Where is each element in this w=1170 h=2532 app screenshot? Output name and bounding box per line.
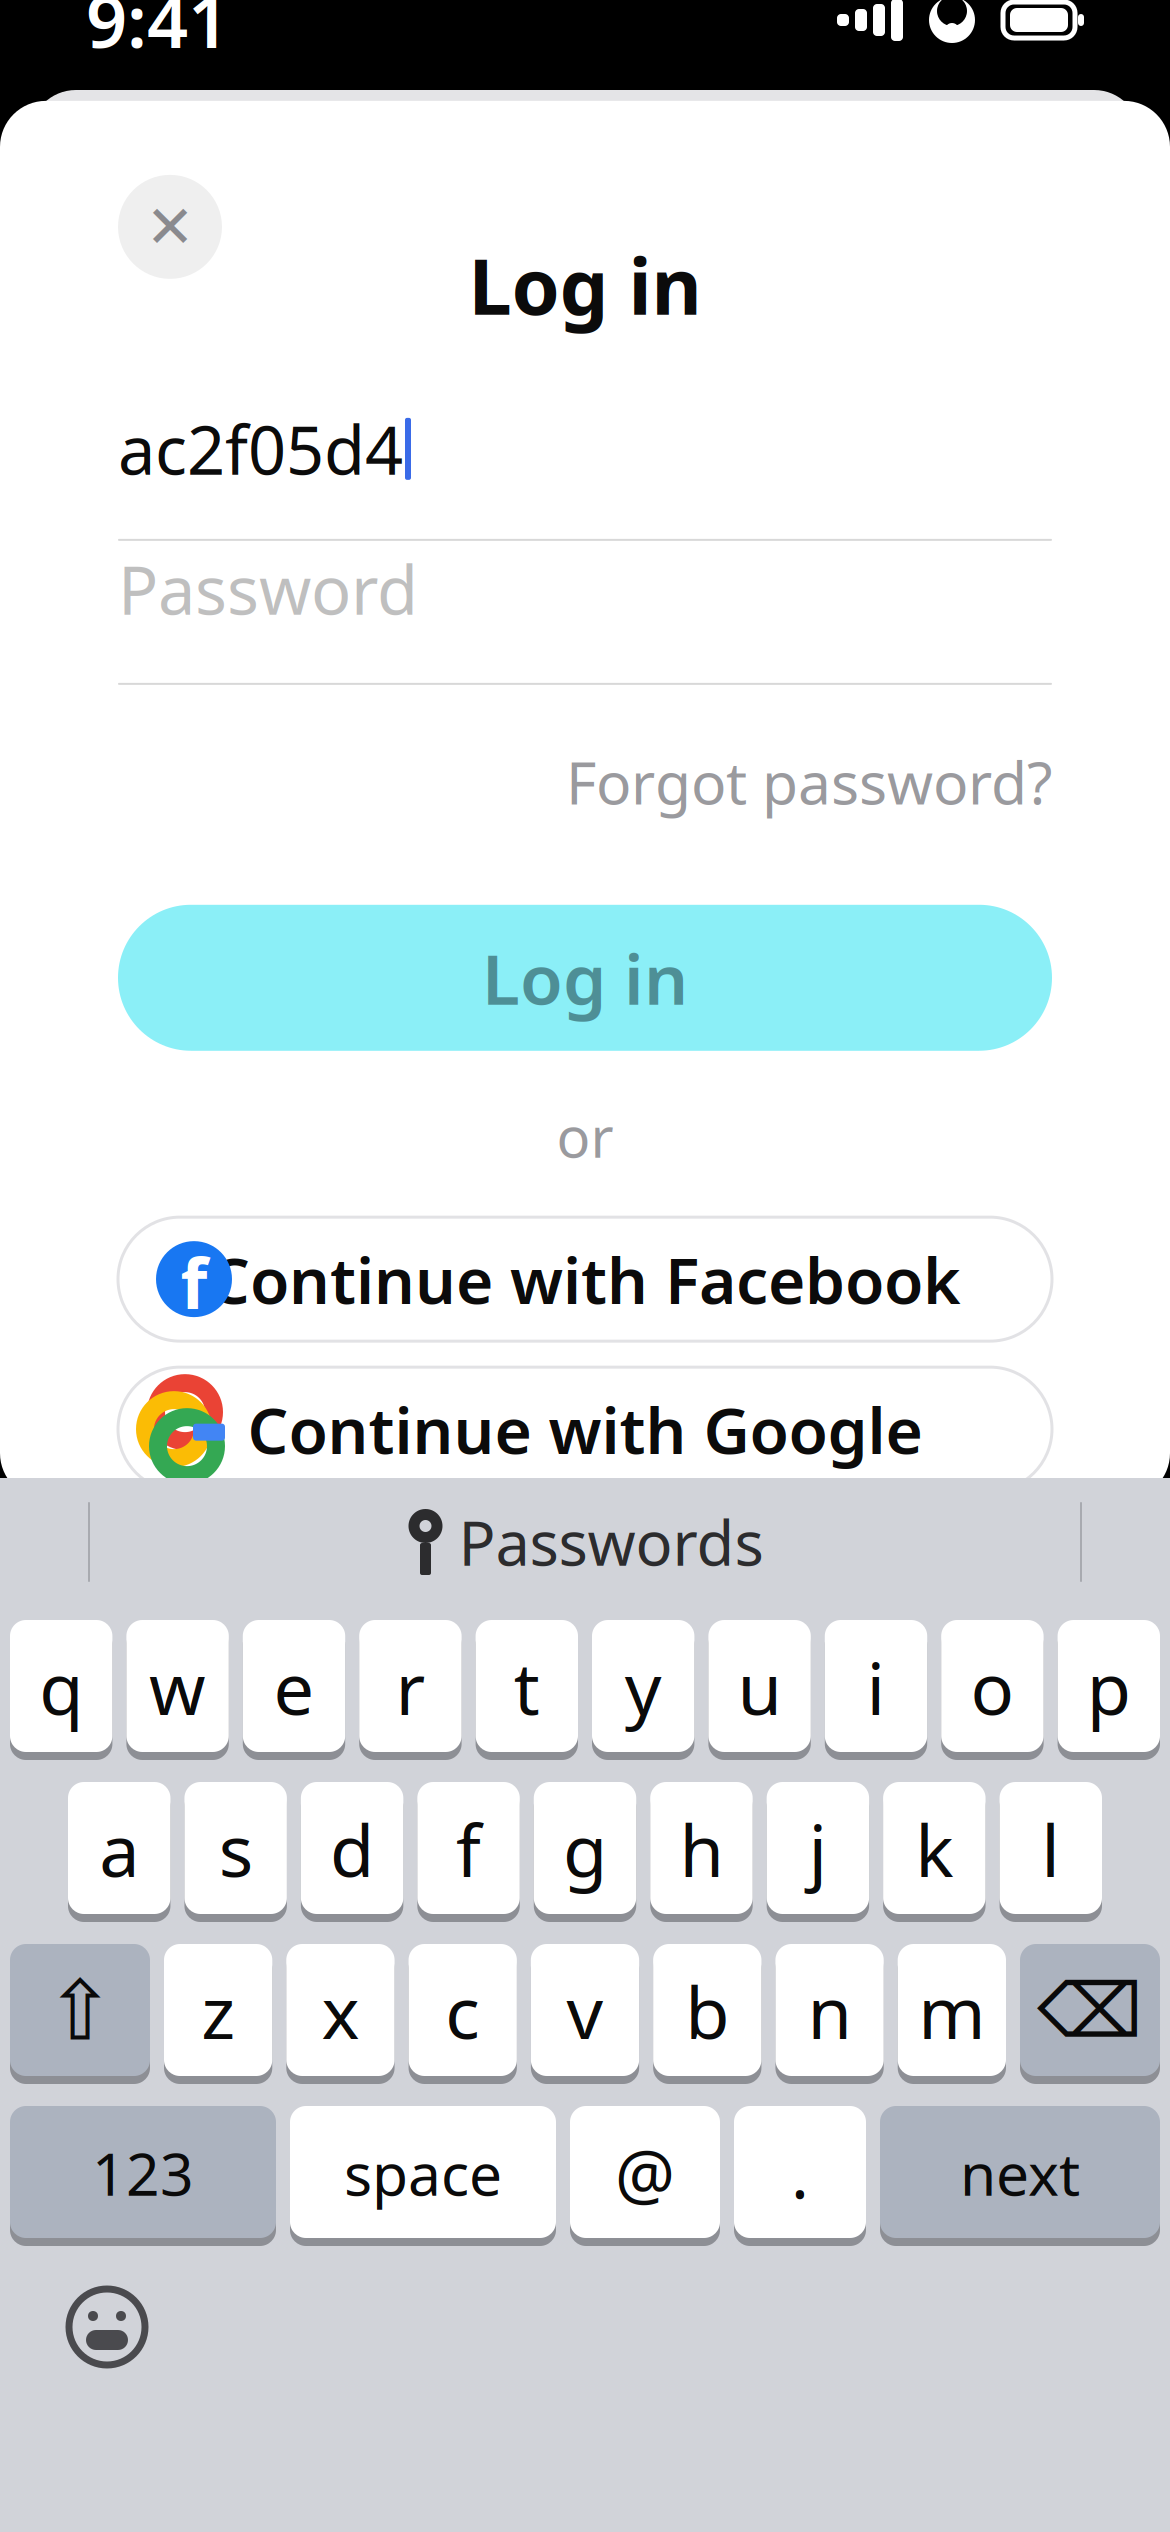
staticText: ac2f05d4 — [118, 405, 403, 493]
button[interactable]: y — [592, 1620, 694, 1760]
button[interactable]: Passwords — [386, 1489, 783, 1595]
button[interactable]: 123 — [10, 2106, 276, 2246]
staticText: k — [915, 1801, 953, 1897]
button[interactable]: h — [650, 1782, 753, 1922]
staticText: Log in — [468, 233, 701, 336]
staticText: b — [685, 1963, 729, 2059]
button[interactable]: m — [898, 1944, 1006, 2084]
staticText: y — [625, 1639, 662, 1735]
staticText: r — [395, 1639, 425, 1735]
staticText: space — [344, 2134, 502, 2212]
button[interactable]: f — [417, 1782, 520, 1922]
button[interactable]: z — [164, 1944, 272, 2084]
staticText: j — [808, 1801, 827, 1897]
button[interactable]: n — [775, 1944, 884, 2084]
staticText: q — [39, 1639, 83, 1735]
staticText: ⌫ — [1037, 1969, 1143, 2053]
button[interactable]: t — [476, 1620, 578, 1760]
staticText: u — [738, 1639, 782, 1735]
button[interactable]: o — [941, 1620, 1044, 1760]
staticText: v — [566, 1963, 603, 2059]
button[interactable]: b — [653, 1944, 761, 2084]
button[interactable]: v — [531, 1944, 639, 2084]
staticText: or — [556, 1099, 613, 1173]
staticText: t — [514, 1639, 540, 1735]
staticText: s — [219, 1801, 253, 1897]
staticText: w — [149, 1639, 206, 1735]
button[interactable]: q — [10, 1620, 112, 1760]
button[interactable]: Continue with Google — [118, 1367, 1052, 1491]
staticText: g — [563, 1801, 607, 1897]
button[interactable]: p — [1058, 1620, 1160, 1760]
button[interactable]: r — [359, 1620, 462, 1760]
staticText: i — [866, 1639, 885, 1735]
staticText: n — [808, 1963, 852, 2059]
button[interactable]: w — [126, 1620, 229, 1760]
staticText: ⇧ — [45, 1964, 114, 2058]
button[interactable]: Continue with Facebook — [118, 1217, 1052, 1341]
staticText: Continue with Google — [247, 1387, 922, 1472]
button[interactable]: e — [243, 1620, 345, 1760]
button[interactable]: Log in — [118, 905, 1052, 1051]
button[interactable]: next — [880, 2106, 1160, 2246]
staticText: c — [445, 1963, 480, 2059]
staticText: d — [330, 1801, 374, 1897]
button[interactable]: Emoji — [52, 2272, 162, 2382]
staticText: l — [1041, 1801, 1060, 1897]
staticText: f — [456, 1801, 481, 1897]
button[interactable]: j — [767, 1782, 869, 1922]
staticText: Continue with Facebook — [209, 1237, 961, 1322]
button[interactable]: d — [301, 1782, 403, 1922]
staticText: 123 — [92, 2134, 194, 2212]
button[interactable]: g — [534, 1782, 636, 1922]
button[interactable]: Delete — [1020, 1944, 1160, 2084]
staticText: 9:41 — [86, 0, 229, 68]
button[interactable]: space — [290, 2106, 556, 2246]
staticText: p — [1087, 1639, 1131, 1735]
staticText: e — [273, 1639, 314, 1735]
button[interactable]: l — [1000, 1782, 1102, 1922]
button[interactable]: a — [68, 1782, 170, 1922]
button[interactable]: @ — [570, 2106, 720, 2246]
staticText: Log in — [482, 932, 688, 1024]
staticText: . — [791, 2129, 809, 2217]
staticText: ✕ — [145, 194, 194, 260]
button[interactable]: s — [184, 1782, 287, 1922]
staticText: f — [180, 1236, 207, 1328]
button[interactable]: Shift — [10, 1944, 150, 2084]
staticText: m — [918, 1963, 985, 2059]
staticText: h — [679, 1801, 723, 1897]
staticText: a — [99, 1801, 139, 1897]
button[interactable]: Close — [118, 175, 222, 279]
button[interactable]: u — [708, 1620, 811, 1760]
staticText: @ — [615, 2129, 675, 2217]
staticText: Passwords — [458, 1501, 763, 1583]
staticText: Password — [118, 545, 418, 633]
button[interactable]: . — [734, 2106, 866, 2246]
button[interactable]: i — [825, 1620, 927, 1760]
staticText: x — [321, 1963, 359, 2059]
button[interactable]: x — [286, 1944, 395, 2084]
staticText: Forgot password? — [566, 743, 1052, 821]
button[interactable]: k — [883, 1782, 985, 1922]
button[interactable]: c — [409, 1944, 517, 2084]
staticText: o — [970, 1639, 1014, 1735]
button[interactable]: Forgot password? — [566, 733, 1052, 831]
staticText: next — [960, 2134, 1080, 2212]
staticText: z — [201, 1963, 235, 2059]
